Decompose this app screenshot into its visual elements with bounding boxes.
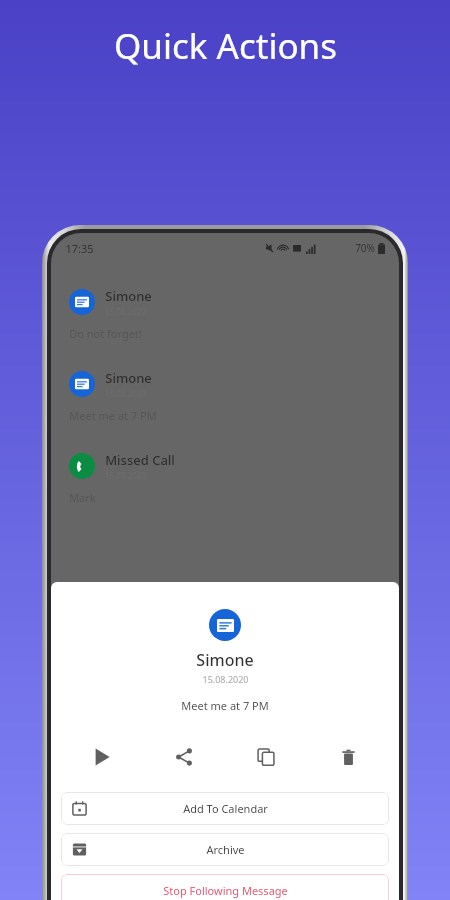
button[interactable]: Copy [229, 740, 303, 774]
staticText: Archive [206, 842, 245, 857]
staticText: Mark [69, 490, 96, 505]
button[interactable]: Archive [61, 833, 389, 866]
button[interactable]: Missed Call [51, 451, 399, 505]
staticText: Meet me at 7 PM [69, 408, 157, 423]
staticText: Quick Actions [114, 22, 337, 70]
staticText: 70% [355, 241, 375, 255]
button[interactable]: Add To Calendar [61, 792, 389, 825]
staticText: 15.08.2020 [202, 673, 249, 685]
button[interactable]: Play [65, 740, 139, 774]
button[interactable]: Delete [311, 740, 385, 774]
staticText: Add To Calendar [183, 801, 268, 816]
staticText: Missed Call [105, 451, 175, 469]
button[interactable]: Simone [51, 369, 399, 423]
staticText: Stop Following Message [163, 883, 288, 898]
staticText: Simone [105, 287, 152, 305]
staticText: Meet me at 7 PM [181, 698, 269, 713]
staticText: Simone [105, 369, 152, 387]
button[interactable]: Stop Following Message [61, 874, 389, 900]
staticText: Simone [196, 649, 254, 671]
staticText: Do not forget! [69, 326, 142, 341]
button[interactable]: Simone [51, 287, 399, 341]
staticText: 17:35 [65, 241, 94, 256]
button[interactable]: Share [147, 740, 221, 774]
